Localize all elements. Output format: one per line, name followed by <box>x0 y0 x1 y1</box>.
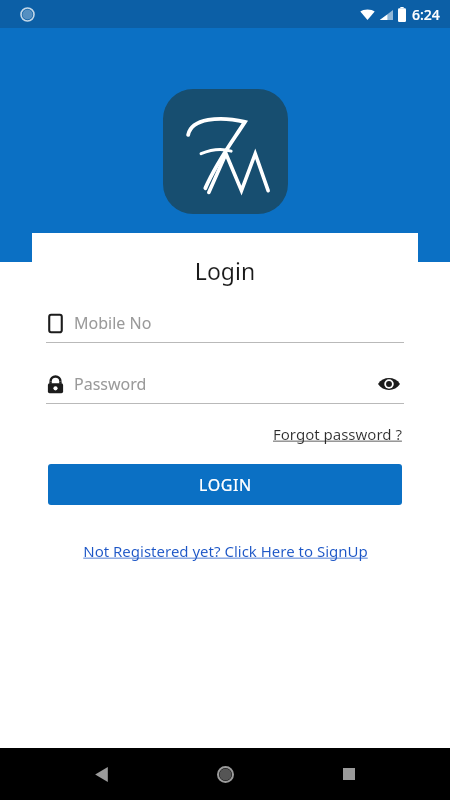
staticText: 6:24 <box>412 5 440 24</box>
staticText: Login <box>32 255 418 286</box>
button[interactable]: Home <box>202 751 248 797</box>
staticText: LOGIN <box>199 474 252 496</box>
other: Password <box>46 375 65 394</box>
button[interactable]: Mobile number <box>46 308 404 343</box>
other: Mobile number <box>46 314 65 333</box>
button[interactable]: Not Registered yet? Click Here to SignUp <box>79 537 372 565</box>
staticText: Not Registered yet? Click Here to SignUp <box>83 541 368 561</box>
button[interactable]: LOGIN <box>48 464 402 505</box>
button[interactable]: Password <box>46 369 404 404</box>
staticText: Forgot password ? <box>273 424 402 444</box>
button[interactable]: Forgot password ? <box>271 420 404 448</box>
button[interactable]: Recent apps <box>326 751 372 797</box>
button[interactable]: Show password <box>374 369 404 399</box>
staticText: Mobile No <box>74 312 404 334</box>
staticText: Password <box>74 373 374 395</box>
button[interactable]: Back <box>78 751 124 797</box>
